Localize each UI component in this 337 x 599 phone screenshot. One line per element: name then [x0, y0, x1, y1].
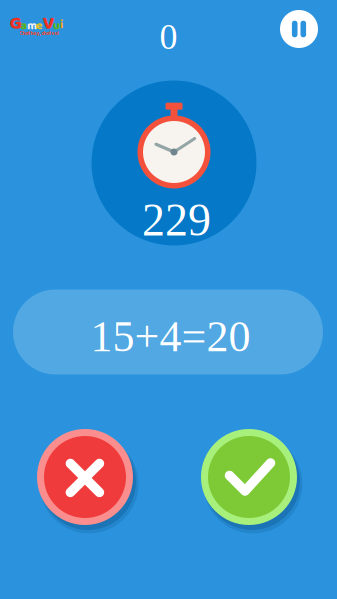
staticText: 0 [159, 17, 177, 57]
staticText: 229 [142, 194, 211, 245]
button[interactable]: Pause [277, 7, 321, 51]
staticText: e [36, 16, 43, 36]
staticText: m [27, 16, 37, 36]
staticText: a [20, 16, 27, 36]
staticText: V [42, 8, 54, 38]
button[interactable]: Wrong answer [37, 429, 133, 525]
staticText: G [9, 8, 21, 38]
staticText: u [53, 16, 60, 36]
staticText: Chơi hay, chơi vui [19, 29, 58, 37]
staticText: i [60, 15, 63, 35]
button[interactable]: Correct answer [201, 429, 297, 525]
staticText: 15+4=20 [90, 312, 250, 361]
